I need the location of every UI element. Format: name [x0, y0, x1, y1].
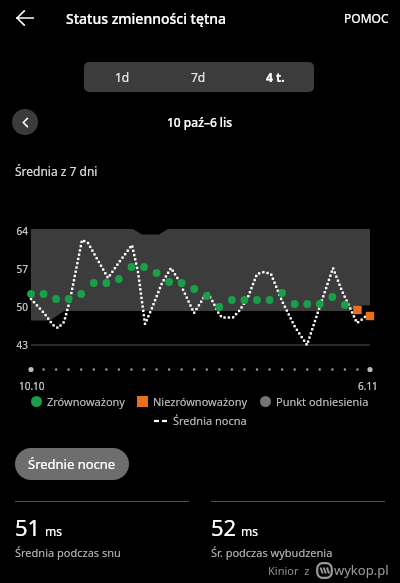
button[interactable]: POMOC	[338, 2, 395, 34]
staticText: ms	[45, 523, 62, 539]
button[interactable]: 1d	[84, 62, 160, 92]
staticText: ms	[241, 523, 258, 539]
staticText: Średnia podczas snu	[15, 545, 121, 560]
staticText: 57	[8, 262, 28, 276]
staticText: Średnia nocna	[173, 413, 247, 428]
button[interactable]: 4 t.	[237, 62, 314, 92]
staticText: Punkt odniesienia	[276, 394, 369, 409]
staticText: 6.11	[358, 379, 378, 393]
button[interactable]: Back	[10, 3, 40, 33]
staticText: Średnie nocne	[28, 455, 116, 473]
staticText: 52	[211, 512, 237, 542]
staticText: Kinior z	[268, 563, 310, 578]
staticText: 51	[15, 512, 41, 542]
staticText: 50	[8, 300, 28, 314]
staticText: Śr. podczas wybudzenia	[211, 545, 333, 560]
button[interactable]: 7d	[160, 62, 237, 92]
staticText: 10.10	[19, 379, 45, 393]
staticText: 7d	[191, 69, 206, 85]
staticText: 4 t.	[266, 69, 285, 85]
staticText: 64	[8, 224, 28, 238]
staticText: 10 paź–6 lis	[167, 114, 233, 130]
staticText: wykop.pl	[334, 561, 389, 579]
staticText: 43	[8, 338, 28, 352]
staticText: POMOC	[344, 10, 389, 26]
button[interactable]: Previous period	[12, 109, 38, 135]
staticText: Średnia z 7 dni	[15, 163, 98, 179]
staticText: Niezrównoważony	[153, 394, 248, 409]
button[interactable]: Średnie nocne	[15, 448, 129, 480]
staticText: 1d	[115, 69, 130, 85]
staticText: Status zmienności tętna	[66, 9, 227, 28]
staticText: Zrównoważony	[47, 394, 125, 409]
